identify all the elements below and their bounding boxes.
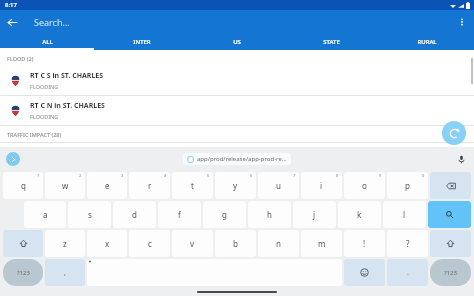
staticText: 6: [250, 173, 253, 178]
button[interactable]: Symbols: [430, 259, 471, 286]
button[interactable]: INTER: [94, 34, 189, 50]
button[interactable]: ?: [387, 230, 428, 257]
staticText: ALL: [42, 38, 53, 46]
staticText: n: [276, 238, 281, 249]
button[interactable]: app/prod/release/app-prod-re...: [183, 153, 291, 165]
button[interactable]: g: [203, 201, 246, 228]
staticText: ?: [406, 238, 410, 249]
staticText: q: [21, 180, 26, 191]
button[interactable]: Search: [428, 201, 471, 228]
staticText: j: [313, 209, 316, 220]
staticText: INTER: [133, 38, 151, 46]
staticText: s: [88, 209, 92, 220]
button[interactable]: u: [258, 172, 299, 199]
button[interactable]: m: [301, 230, 342, 257]
button[interactable]: t: [172, 172, 213, 199]
staticText: FLOODING: [30, 83, 59, 90]
button[interactable]: v: [172, 230, 213, 257]
button[interactable]: b: [215, 230, 256, 257]
staticText: !: [363, 238, 366, 249]
staticText: d: [132, 209, 137, 220]
staticText: ,: [64, 268, 66, 278]
staticText: l: [403, 209, 406, 220]
button[interactable]: n: [258, 230, 299, 257]
button[interactable]: Back: [0, 10, 24, 34]
button[interactable]: Emoji: [344, 259, 385, 286]
button[interactable]: f: [158, 201, 201, 228]
staticText: RT C N in ST. CHARLES: [30, 101, 105, 111]
button[interactable]: RT C S in ST. CHARLES: [0, 66, 474, 95]
staticText: w: [62, 180, 69, 191]
button[interactable]: s: [68, 201, 111, 228]
staticText: TRAFFIC IMPACT (28): [7, 131, 62, 138]
staticText: 8: [336, 173, 339, 178]
button[interactable]: Shift: [430, 230, 471, 257]
staticText: a: [43, 209, 48, 220]
staticText: z: [63, 238, 67, 249]
staticText: RURAL: [417, 38, 437, 46]
staticText: 7: [293, 173, 296, 178]
button[interactable]: y: [215, 172, 256, 199]
button[interactable]: Backspace: [430, 172, 471, 199]
staticText: t: [191, 180, 194, 191]
staticText: o: [362, 180, 367, 191]
staticText: ?123: [17, 269, 30, 277]
staticText: FLOODING: [30, 113, 59, 120]
button[interactable]: h: [248, 201, 291, 228]
staticText: p: [405, 180, 410, 191]
staticText: e: [105, 180, 110, 191]
button[interactable]: !: [344, 230, 385, 257]
button[interactable]: c: [129, 230, 170, 257]
staticText: 2: [79, 173, 82, 178]
button[interactable]: i: [301, 172, 342, 199]
button[interactable]: Shift: [3, 230, 43, 257]
button[interactable]: RURAL: [379, 34, 474, 50]
staticText: c: [148, 238, 152, 249]
button[interactable]: x: [87, 230, 127, 257]
button[interactable]: p: [387, 172, 428, 199]
staticText: .: [407, 268, 409, 278]
staticText: i: [320, 180, 323, 191]
button[interactable]: a: [24, 201, 66, 228]
button[interactable]: d: [113, 201, 156, 228]
staticText: 8:17: [5, 1, 17, 9]
button[interactable]: j: [293, 201, 336, 228]
button[interactable]: z: [45, 230, 85, 257]
staticText: b: [233, 238, 238, 249]
button[interactable]: Voice input: [454, 152, 468, 166]
button[interactable]: l: [383, 201, 426, 228]
staticText: x: [105, 238, 110, 249]
button[interactable]: e: [87, 172, 127, 199]
button[interactable]: q: [3, 172, 43, 199]
staticText: v: [190, 238, 195, 249]
staticText: y: [233, 180, 238, 191]
staticText: STATE: [323, 38, 340, 46]
staticText: 1: [37, 173, 40, 178]
button[interactable]: o: [344, 172, 385, 199]
staticText: 0: [422, 173, 425, 178]
button[interactable]: Symbols: [3, 259, 43, 286]
button[interactable]: Refresh: [442, 121, 466, 145]
button[interactable]: k: [338, 201, 381, 228]
staticText: u: [276, 180, 281, 191]
staticText: m: [318, 238, 326, 249]
button[interactable]: US: [189, 34, 284, 50]
button[interactable]: ALL: [0, 34, 94, 50]
button[interactable]: More options: [450, 10, 474, 34]
button[interactable]: Expand suggestions: [6, 152, 20, 166]
button[interactable]: w: [45, 172, 85, 199]
staticText: r: [148, 180, 152, 191]
staticText: RT C S in ST. CHARLES: [30, 71, 104, 81]
staticText: ?123: [444, 269, 457, 277]
staticText: 5: [207, 173, 210, 178]
button[interactable]: RT C N in ST. CHARLES: [0, 96, 474, 125]
staticText: g: [222, 209, 227, 220]
staticText: h: [267, 209, 272, 220]
staticText: US: [233, 38, 241, 46]
button[interactable]: r: [129, 172, 170, 199]
staticText: 3: [121, 173, 124, 178]
button[interactable]: STATE: [284, 34, 379, 50]
